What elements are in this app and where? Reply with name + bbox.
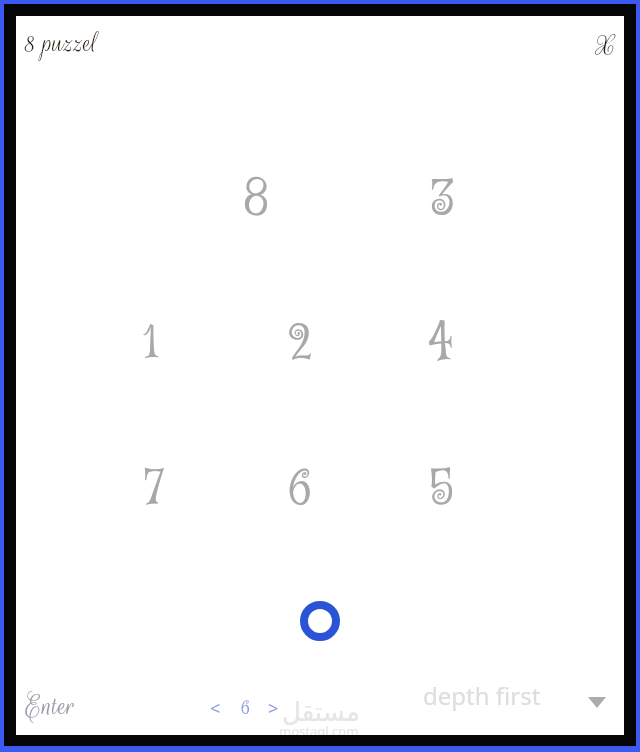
staticText: 3 — [431, 168, 455, 234]
staticText: X — [595, 29, 617, 63]
button[interactable]: depth first — [416, 668, 624, 722]
button[interactable]: Next step — [260, 694, 286, 722]
staticText: 8 — [244, 168, 269, 234]
staticText: 4 — [428, 312, 454, 378]
staticText: 8 puzzel — [25, 26, 98, 61]
button[interactable]: 7 — [92, 428, 216, 552]
button[interactable]: 2 — [238, 283, 362, 407]
staticText: 2 — [288, 312, 312, 378]
staticText: 6 — [288, 457, 312, 523]
button[interactable]: Step 6 — [232, 694, 258, 722]
button[interactable]: 8 — [194, 139, 318, 263]
staticText: 6 — [241, 696, 250, 721]
staticText: Enter — [25, 688, 76, 724]
staticText: 7 — [144, 457, 164, 523]
staticText: > — [268, 696, 279, 721]
staticText: mostaql.com — [279, 722, 359, 735]
button[interactable]: Shuffle board — [296, 597, 344, 645]
button[interactable]: 1 — [89, 283, 213, 407]
button[interactable]: 3 — [381, 139, 505, 263]
staticText: 5 — [430, 457, 454, 523]
button[interactable]: 4 — [379, 283, 503, 407]
button[interactable]: Close — [591, 25, 621, 67]
button[interactable]: Enter — [21, 684, 80, 728]
staticText: depth first — [423, 679, 541, 712]
staticText: مستقل — [282, 697, 360, 727]
button[interactable]: Previous step — [202, 694, 228, 722]
button[interactable]: 8 puzzel — [21, 22, 102, 65]
staticText: 1 — [143, 312, 159, 378]
staticText: < — [210, 696, 221, 721]
button[interactable]: 5 — [380, 428, 504, 552]
button[interactable]: 6 — [238, 428, 362, 552]
